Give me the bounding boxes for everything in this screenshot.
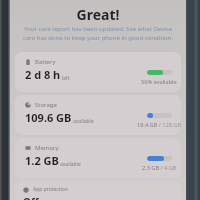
staticText: 56% available	[141, 78, 177, 86]
button[interactable]: Battery	[15, 52, 181, 92]
staticText: Great!	[10, 5, 186, 24]
staticText: Storage	[35, 101, 57, 109]
staticText: 1.2 GB	[25, 153, 59, 168]
staticText: 109.6 GB	[25, 110, 72, 125]
button[interactable]: App protection	[15, 181, 181, 200]
button[interactable]: Memory	[15, 138, 181, 178]
staticText: available	[73, 118, 94, 125]
staticText: 2.3 GB / 4 GB	[142, 164, 177, 172]
staticText: Memory	[35, 144, 59, 152]
staticText: Your care report has been updated. See w…	[10, 25, 186, 42]
button[interactable]: Storage	[15, 95, 181, 135]
staticText: 2 d 8 h	[25, 67, 61, 82]
staticText: App protection	[33, 186, 68, 193]
staticText: 18.4 GB / 128 GB	[137, 121, 181, 129]
staticText: Off	[23, 195, 39, 200]
staticText: available	[60, 161, 81, 168]
staticText: left	[62, 75, 70, 82]
staticText: Battery	[35, 58, 56, 66]
